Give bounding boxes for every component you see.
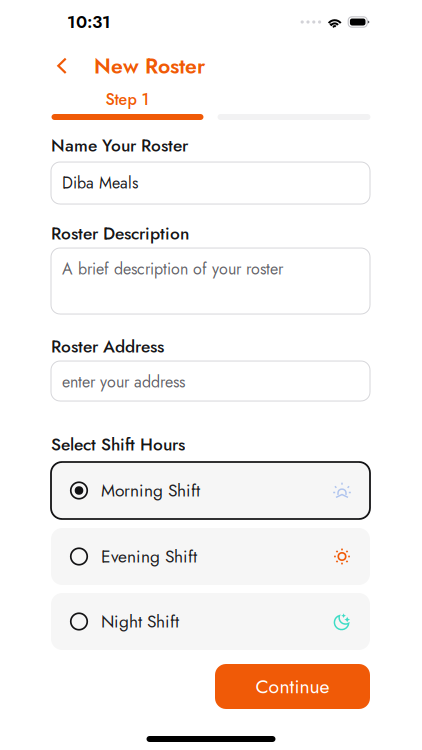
button[interactable]: Evening Shift [51,528,370,585]
staticText: 10:31 [67,13,111,31]
staticText: Diba Meals [62,175,138,191]
staticText: New Roster [94,55,205,77]
button[interactable]: Morning Shift [51,462,370,519]
button[interactable]: Back [50,54,74,78]
staticText: Roster Address [51,337,164,355]
staticText: Evening Shift [101,547,197,565]
button[interactable]: Night Shift [51,593,370,650]
staticText: Select Shift Hours [51,435,185,453]
staticText: Name Your Roster [51,136,188,154]
staticText: Roster Description [51,224,189,242]
staticText: Continue [255,676,329,696]
staticText: A brief description of your roster [62,261,283,277]
staticText: Step 1 [105,91,149,108]
button[interactable]: Continue [215,664,370,709]
staticText: enter your address [62,374,185,390]
staticText: Night Shift [101,612,179,630]
staticText: Morning Shift [101,481,200,499]
